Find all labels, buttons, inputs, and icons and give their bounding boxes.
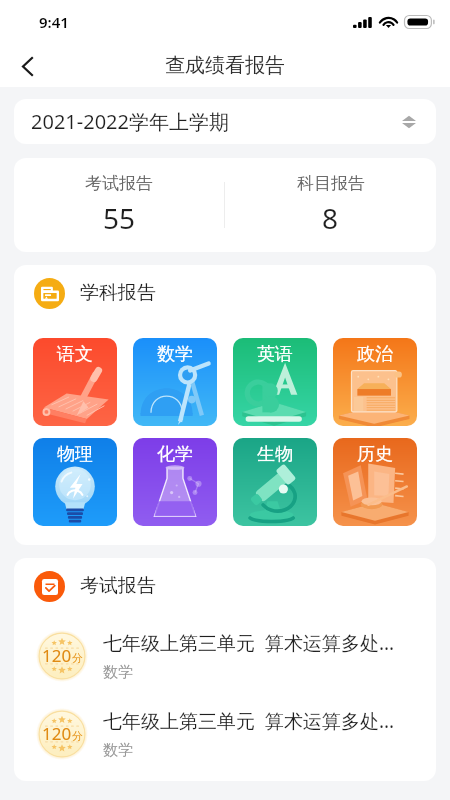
button[interactable]: 考试报告 [14, 158, 224, 252]
staticText: 2021-2022学年上学期 [31, 108, 229, 135]
button[interactable]: 2021-2022学年上学期 [14, 99, 436, 144]
staticText: 分 [72, 729, 83, 743]
staticText: 生物 [257, 443, 293, 466]
staticText: 七年级上第三单元 算术运算多处... [103, 708, 395, 734]
staticText: 七年级上第三单元 算术运算多处... [103, 630, 395, 656]
button[interactable]: 化学 [133, 438, 217, 526]
staticText: 英语 [257, 343, 293, 366]
staticText: 考试报告 [80, 574, 156, 598]
button[interactable]: 120 [14, 695, 436, 773]
staticText: 查成绩看报告 [165, 53, 285, 78]
staticText: 8 [322, 199, 339, 237]
button[interactable]: 科目报告 [225, 158, 436, 252]
button[interactable]: 语文 [33, 338, 117, 426]
staticText: 120 [42, 722, 72, 745]
staticText: 55 [103, 199, 136, 237]
staticText: 120 [42, 644, 72, 667]
staticText: 考试报告 [85, 173, 153, 194]
staticText: 9:41 [39, 12, 69, 32]
button[interactable]: 政治 [333, 338, 417, 426]
staticText: 政治 [357, 343, 393, 366]
staticText: 数学 [103, 741, 133, 760]
staticText: 数学 [103, 663, 133, 682]
button[interactable]: 数学 [133, 338, 217, 426]
button[interactable]: 英语 [233, 338, 317, 426]
staticText: 化学 [157, 443, 193, 466]
staticText: 语文 [57, 343, 93, 366]
staticText: 物理 [57, 443, 93, 466]
staticText: 历史 [357, 443, 393, 466]
button[interactable]: 120 [14, 617, 436, 695]
staticText: 科目报告 [297, 173, 365, 194]
button[interactable]: Back [6, 45, 48, 87]
staticText: 学科报告 [80, 281, 156, 305]
staticText: 分 [72, 651, 83, 665]
button[interactable]: 生物 [233, 438, 317, 526]
staticText: 数学 [157, 343, 193, 366]
button[interactable]: 物理 [33, 438, 117, 526]
button[interactable]: 历史 [333, 438, 417, 526]
